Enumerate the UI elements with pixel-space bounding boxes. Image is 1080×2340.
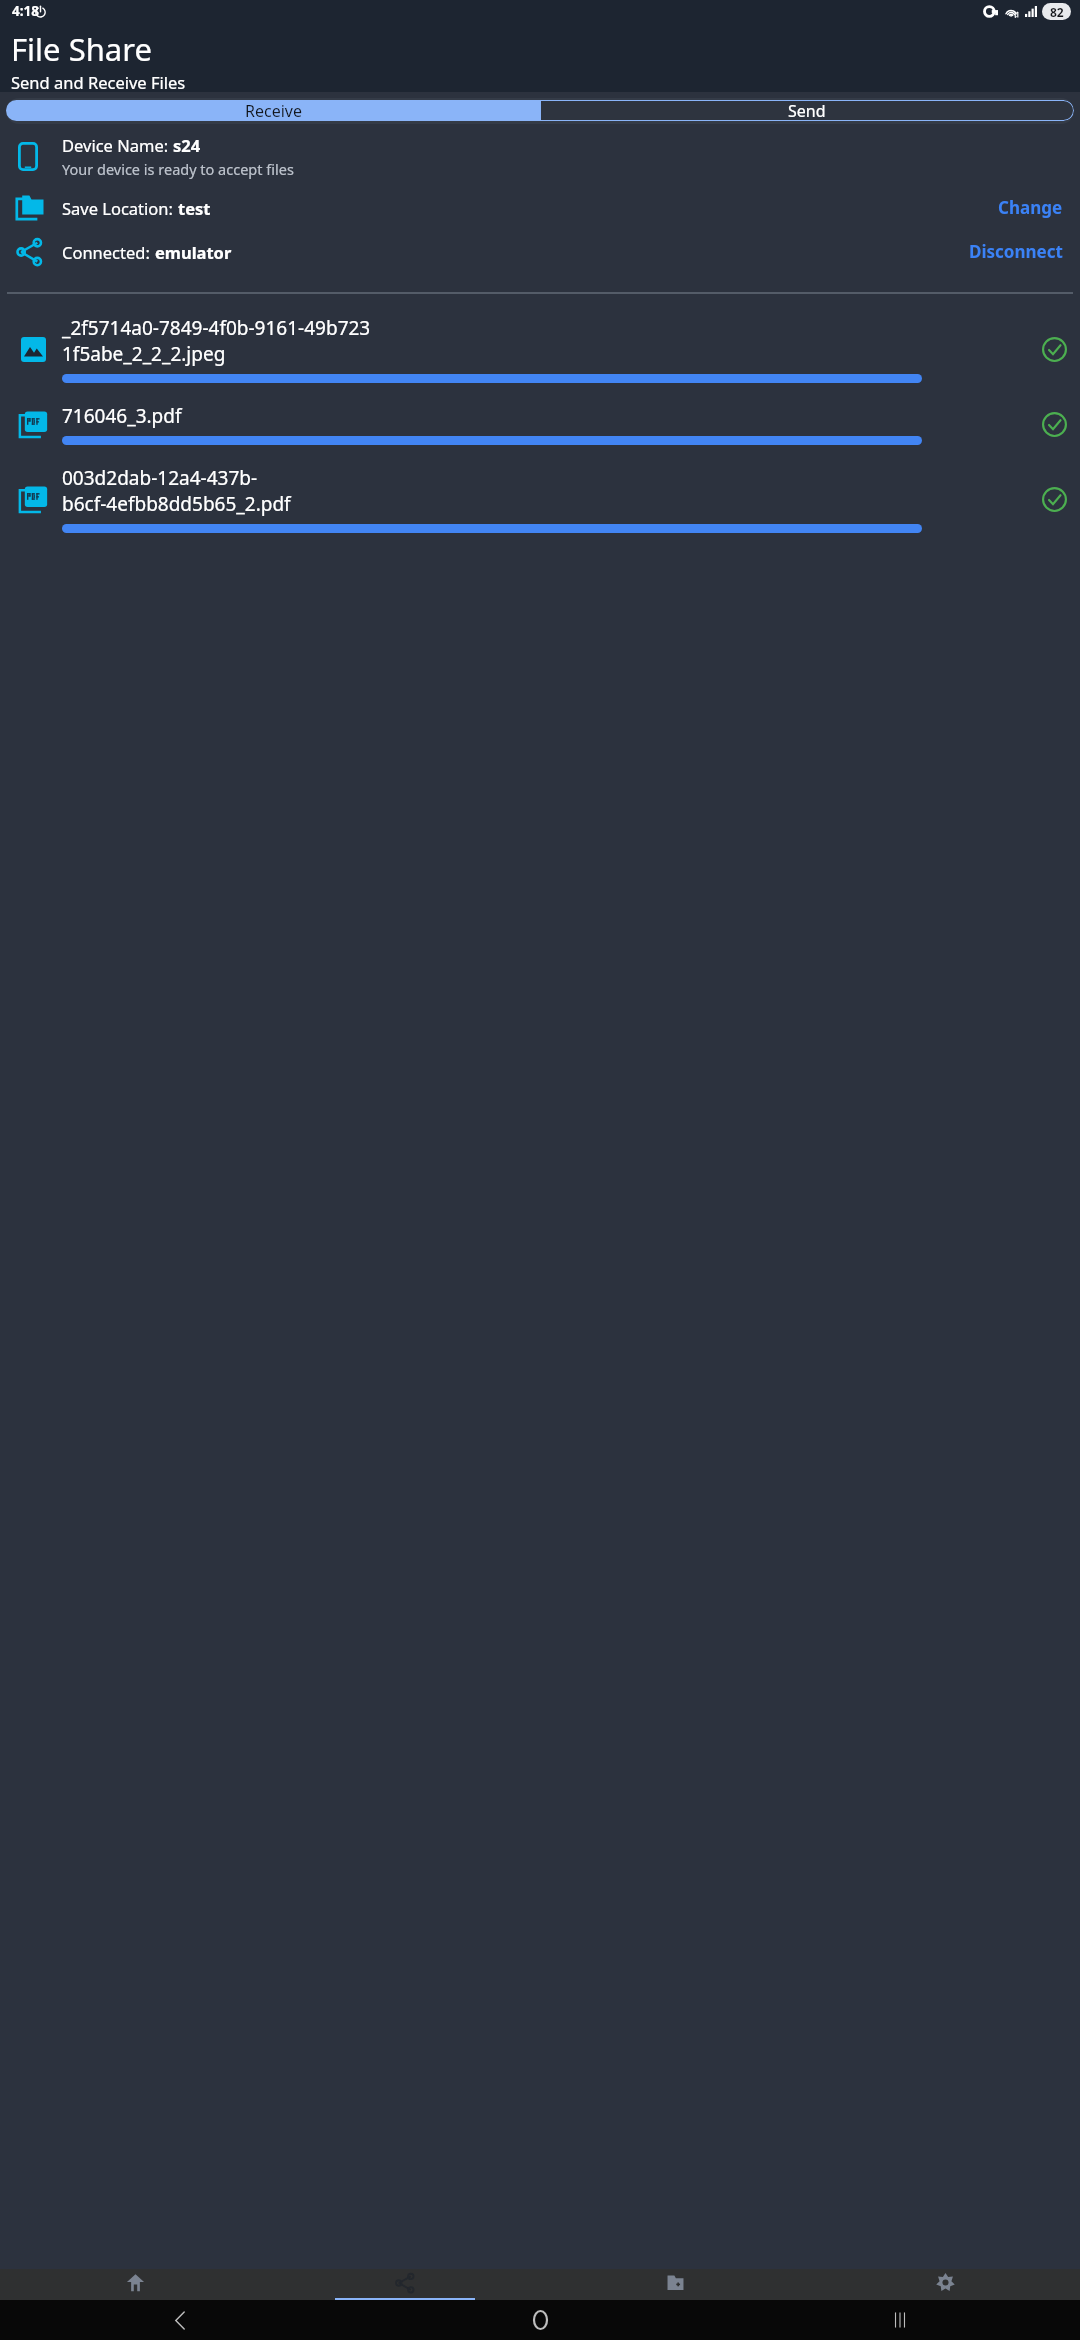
other: Back (174, 2311, 186, 2330)
other: Home (533, 2310, 548, 2330)
button[interactable]: Save Location: (0, 190, 1080, 225)
button[interactable]: _2f5714a0-7849-4f0b-9161-49b723 (0, 315, 1080, 383)
staticText: Change (998, 196, 1063, 219)
staticText: emulator (155, 241, 232, 263)
staticText: Save Location: (62, 197, 178, 219)
button[interactable]: Share (270, 2269, 540, 2300)
staticText: 716046_3.pdf (62, 403, 182, 429)
button[interactable]: 003d2dab-12a4-437b- (0, 465, 1080, 533)
staticText: _2f5714a0-7849-4f0b-9161-49b723 (62, 315, 371, 341)
staticText: Receive (245, 100, 302, 121)
staticText: Connected: (62, 241, 155, 263)
other: Recents (893, 2311, 907, 2329)
staticText: b6cf-4efbb8dd5b65_2.pdf (62, 491, 291, 517)
button[interactable]: Settings (810, 2269, 1080, 2300)
staticText: Device Name: (62, 134, 173, 156)
button[interactable]: Change (994, 192, 1067, 223)
staticText: 003d2dab-12a4-437b- (62, 465, 258, 491)
staticText: 82 (1050, 4, 1064, 20)
staticText: 1f5abe_2_2_2.jpeg (62, 341, 226, 367)
staticText: Send (788, 100, 826, 121)
staticText: 4:18 (12, 2, 39, 20)
button[interactable]: Connected: (0, 234, 1080, 269)
button[interactable]: New folder (540, 2269, 810, 2300)
button[interactable]: Device Name: (0, 131, 1080, 182)
button[interactable]: Send (540, 100, 1074, 121)
button[interactable]: Disconnect (965, 236, 1067, 267)
button[interactable]: 716046_3.pdf (0, 403, 1080, 445)
staticText: Disconnect (969, 240, 1063, 263)
button[interactable]: Home (0, 2269, 270, 2300)
staticText: File Share (11, 28, 152, 70)
staticText: Send and Receive Files (11, 71, 186, 93)
button[interactable]: Receive (6, 100, 540, 121)
staticText: s24 (173, 134, 201, 156)
staticText: test (178, 197, 211, 219)
staticText: Your device is ready to accept files (62, 159, 294, 179)
